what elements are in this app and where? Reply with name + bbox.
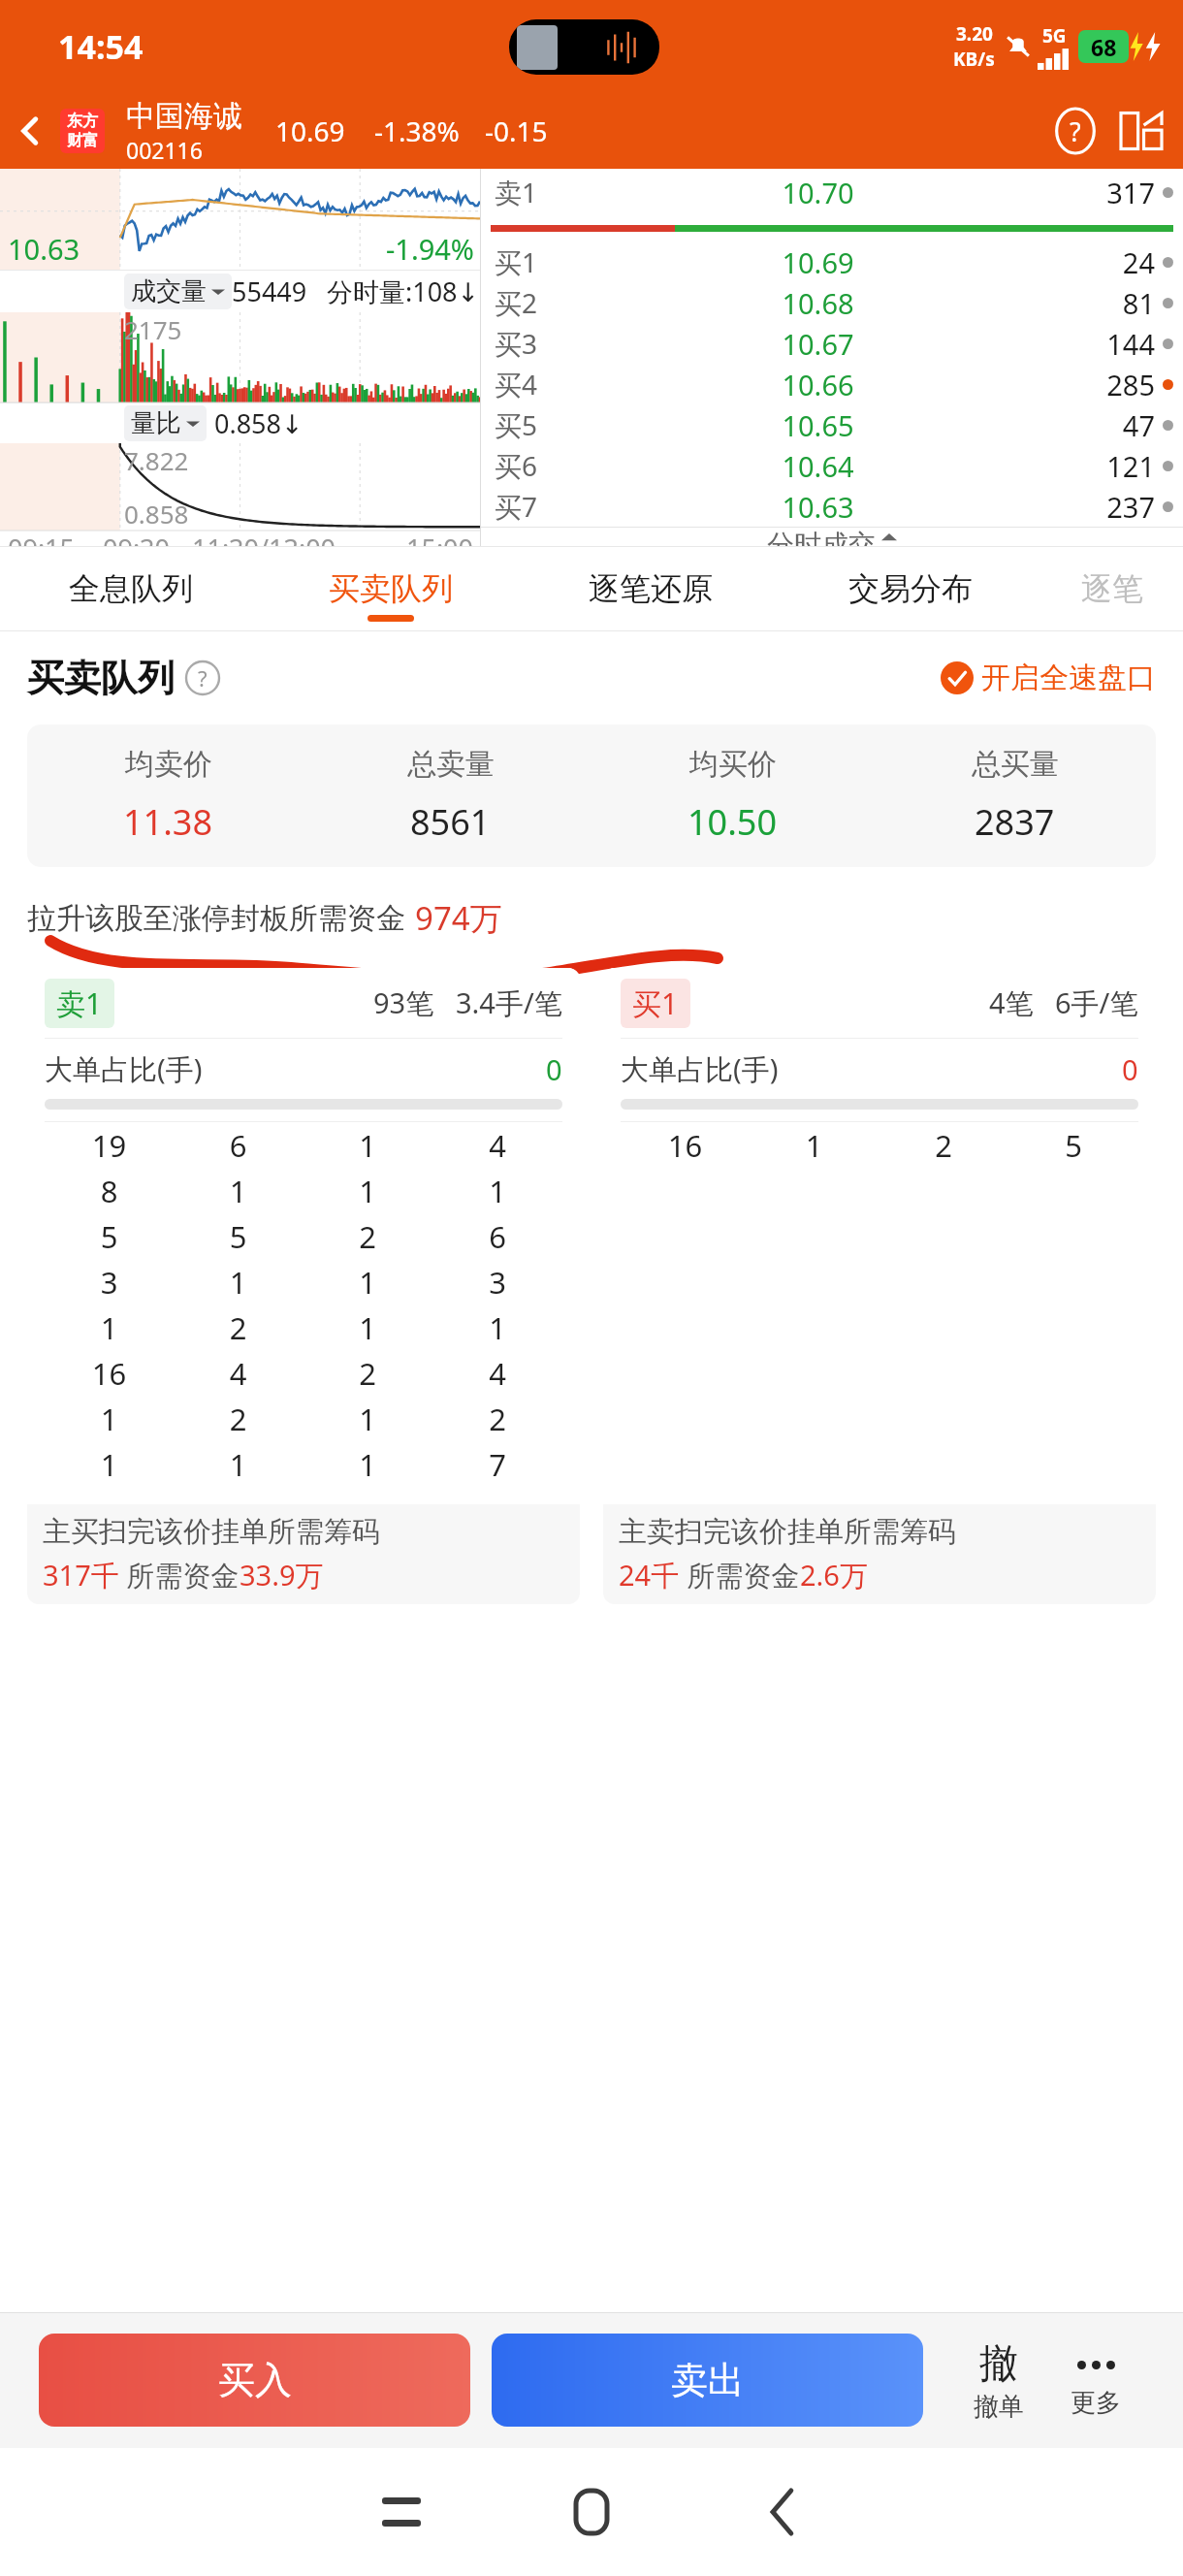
staticText: 5G <box>1042 23 1067 48</box>
staticText: 6手/笔 <box>1055 983 1138 1022</box>
button[interactable]: 分时成交 <box>481 528 1183 546</box>
button[interactable]: 买2 <box>495 282 1173 323</box>
button[interactable]: 开启全速盘口 <box>941 660 1156 696</box>
staticText: 买1 <box>495 243 564 280</box>
staticText: 317千 <box>43 1556 119 1594</box>
staticText: 主买扫完该价挂单所需筹码 <box>43 1514 380 1550</box>
button[interactable]: 买1 <box>603 968 1156 1604</box>
staticText: 0.858 <box>124 497 189 531</box>
staticText: 主卖扫完该价挂单所需筹码 <box>619 1514 956 1550</box>
staticText: 大单占比(手) <box>45 1049 203 1088</box>
button[interactable]: 买5 <box>495 404 1173 445</box>
staticText: 1 <box>174 1444 303 1485</box>
staticText: 1 <box>174 1262 303 1303</box>
button[interactable]: 卖1 <box>495 169 1173 215</box>
staticText: 0.858↓ <box>214 405 304 441</box>
staticText: 买2 <box>495 284 564 321</box>
staticText: 买1 <box>632 983 679 1023</box>
button[interactable]: 逐笔 <box>1040 546 1183 631</box>
staticText: 16 <box>45 1353 174 1394</box>
button[interactable]: 买4 <box>495 364 1173 404</box>
staticText: 2 <box>303 1353 432 1394</box>
staticText: 6 <box>174 1125 303 1166</box>
staticText: 开启全速盘口 <box>981 660 1156 696</box>
staticText: 1 <box>45 1307 174 1348</box>
button[interactable]: 买入 <box>39 2334 470 2427</box>
staticText: 14:54 <box>58 24 144 69</box>
staticText: -1.38% <box>374 113 460 149</box>
button[interactable]: 逐笔还原 <box>521 546 781 631</box>
staticText: 7.822 <box>124 443 189 477</box>
staticText: 11:30/13:00 <box>192 531 336 546</box>
staticText: 8561 <box>410 798 491 846</box>
button[interactable]: Back <box>728 2459 835 2565</box>
button[interactable]: 买3 <box>495 323 1173 364</box>
staticText: 大单占比(手) <box>621 1049 779 1088</box>
button[interactable]: 卖1 <box>27 968 580 1604</box>
button[interactable]: 成交量 <box>131 275 225 307</box>
staticText: 10.68 <box>564 284 1071 322</box>
staticText: 10.69 <box>564 243 1071 281</box>
staticText: 24千 <box>619 1556 680 1594</box>
button[interactable]: 买1 <box>495 241 1173 282</box>
button[interactable]: Back <box>0 93 60 169</box>
button[interactable]: Help <box>186 661 219 694</box>
staticText: 1 <box>45 1444 174 1485</box>
staticText: 2 <box>174 1399 303 1439</box>
button[interactable]: East Money <box>60 109 105 153</box>
staticText: 更多 <box>1071 2387 1121 2419</box>
staticText: 6 <box>432 1216 562 1257</box>
staticText: -1.94% <box>386 230 474 268</box>
staticText: 逐笔 <box>1081 569 1143 608</box>
staticText: -0.15 <box>485 113 548 149</box>
staticText: 1 <box>174 1171 303 1211</box>
button[interactable]: 买卖队列 <box>261 546 521 631</box>
staticText: 10.63 <box>8 230 80 268</box>
staticText: 24 <box>1071 243 1155 281</box>
staticText: 分时量:108↓ <box>327 274 480 309</box>
staticText: 逐笔还原 <box>589 569 713 608</box>
button[interactable]: 交易分布 <box>781 546 1040 631</box>
staticText: 93笔 <box>373 983 434 1022</box>
staticText: 分时成交 <box>767 528 876 546</box>
button[interactable]: 撤 <box>950 2338 1047 2423</box>
button[interactable]: 买7 <box>495 486 1173 527</box>
staticText: 1 <box>45 1399 174 1439</box>
staticText: KB/s <box>953 47 995 72</box>
staticText: 68 <box>1091 32 1117 62</box>
staticText: 974万 <box>415 896 502 940</box>
button[interactable]: 卖出 <box>492 2334 923 2427</box>
staticText: 均买价 <box>689 746 777 783</box>
staticText: 拉升该股至涨停封板所需资金 <box>27 900 405 937</box>
staticText: 所需资金 <box>680 1556 800 1594</box>
staticText: 交易分布 <box>848 569 973 608</box>
button[interactable]: 量比 <box>131 407 200 439</box>
staticText: 卖1 <box>495 174 564 210</box>
staticText: 33.9万 <box>240 1556 324 1594</box>
staticText: 总买量 <box>972 746 1059 783</box>
staticText: 10.64 <box>564 447 1071 485</box>
staticText: 2175 <box>124 312 182 346</box>
button[interactable]: 更多 <box>1047 2342 1144 2419</box>
staticText: 中国海诚 <box>126 98 242 135</box>
staticText: 1 <box>432 1307 562 1348</box>
staticText: 1 <box>303 1125 432 1166</box>
button[interactable]: Recents <box>348 2459 455 2565</box>
button[interactable]: 全息队列 <box>0 546 261 631</box>
staticText: 买入 <box>218 2357 292 2403</box>
staticText: 买卖队列 <box>329 569 453 608</box>
staticText: 买卖队列 <box>27 655 175 701</box>
staticText: 2837 <box>975 798 1055 846</box>
button[interactable]: Home <box>538 2459 645 2565</box>
staticText: 买4 <box>495 366 564 402</box>
staticText: 10.50 <box>687 798 778 846</box>
button[interactable]: Help <box>1047 103 1103 159</box>
staticText: 317 <box>1071 174 1155 211</box>
button[interactable]: Layout <box>1113 103 1169 159</box>
staticText: 0 <box>546 1050 562 1088</box>
staticText: 1 <box>303 1307 432 1348</box>
staticText: 5 <box>1008 1125 1138 1166</box>
button[interactable]: 买6 <box>495 445 1173 486</box>
staticText: 东方 <box>67 112 98 131</box>
staticText: 1 <box>432 1171 562 1211</box>
